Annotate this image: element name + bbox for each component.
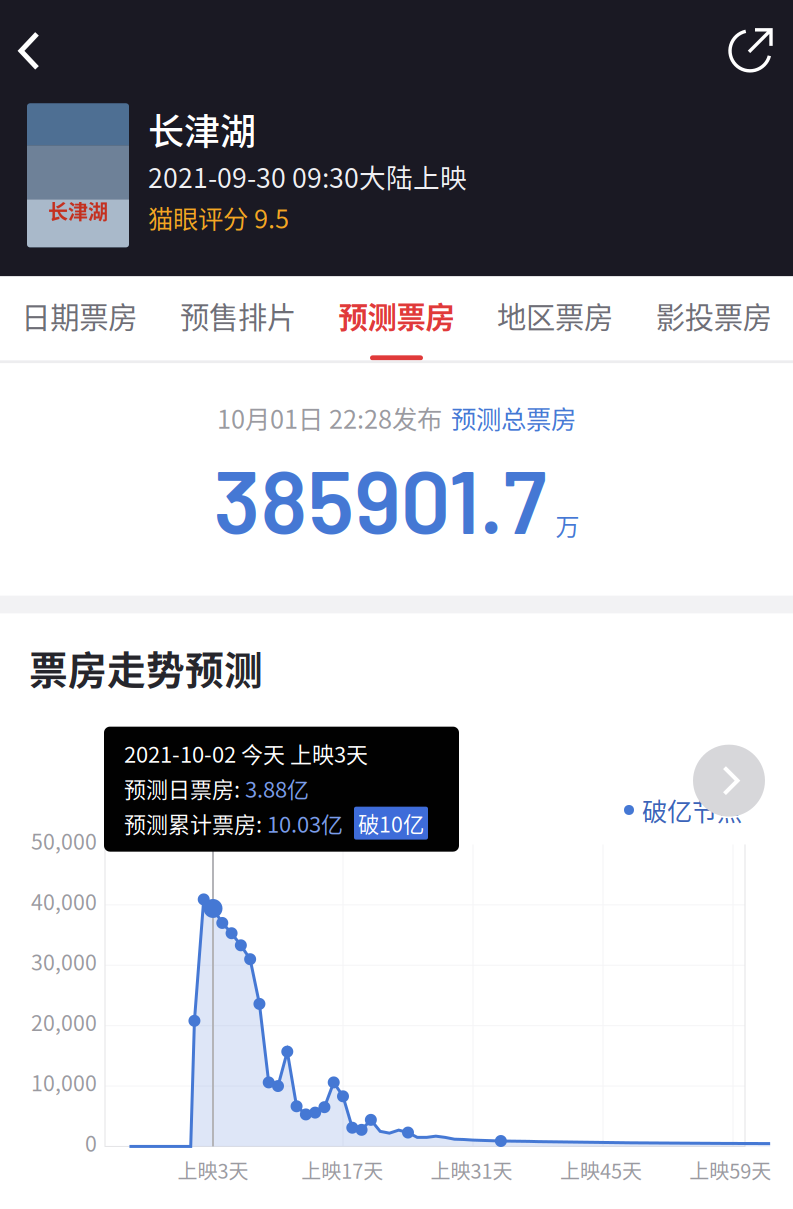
staticText: 猫眼评分 9.5 bbox=[148, 199, 289, 236]
staticText: 影投票房 bbox=[656, 294, 772, 337]
staticText: 万 bbox=[555, 508, 579, 543]
staticText: 10,000 bbox=[31, 1067, 97, 1097]
staticText: 50,000 bbox=[31, 825, 97, 856]
staticText: 预测总票房 bbox=[451, 399, 576, 436]
staticText: 10.03亿 bbox=[267, 807, 343, 839]
staticText: 上映45天 bbox=[560, 1155, 642, 1184]
staticText: 0 bbox=[85, 1127, 97, 1158]
staticText: 票房走势预测 bbox=[29, 640, 263, 696]
button[interactable]: 影投票房 bbox=[634, 297, 793, 360]
staticText: 预测日票房: bbox=[124, 772, 245, 804]
button[interactable]: 地区票房 bbox=[476, 297, 634, 360]
staticText: 上映31天 bbox=[431, 1155, 513, 1184]
button[interactable]: 日期票房 bbox=[0, 297, 159, 360]
staticText: 2021-10-02 今天 上映3天 bbox=[124, 737, 368, 769]
staticText: 40,000 bbox=[31, 885, 97, 916]
button[interactable]: Next bbox=[693, 745, 765, 817]
staticText: 上映3天 bbox=[177, 1155, 248, 1184]
staticText: 10月01日 22:28发布 bbox=[217, 399, 442, 436]
button[interactable]: Back bbox=[0, 17, 60, 85]
staticText: 地区票房 bbox=[497, 294, 613, 337]
staticText: 预测票房 bbox=[338, 294, 454, 337]
staticText: 上映17天 bbox=[301, 1155, 383, 1184]
button[interactable]: 预售排片 bbox=[159, 297, 317, 360]
staticText: 385901.7 bbox=[213, 446, 546, 552]
staticText: 2021-09-30 09:30大陆上映 bbox=[148, 157, 467, 196]
staticText: 破10亿 bbox=[358, 808, 424, 839]
button[interactable]: 预测票房 bbox=[317, 297, 476, 360]
staticText: 预测累计票房: bbox=[124, 807, 267, 839]
staticText: 上映59天 bbox=[689, 1155, 771, 1184]
staticText: 20,000 bbox=[31, 1006, 97, 1037]
button[interactable]: Share bbox=[710, 15, 793, 87]
staticText: 破亿节点 bbox=[642, 792, 742, 828]
staticText: 长津湖 bbox=[148, 103, 256, 155]
staticText: 30,000 bbox=[31, 946, 97, 977]
staticText: 长津湖 bbox=[48, 196, 108, 225]
staticText: 预售排片 bbox=[180, 294, 296, 337]
staticText: 3.88亿 bbox=[245, 772, 309, 804]
staticText: 日期票房 bbox=[21, 294, 137, 337]
